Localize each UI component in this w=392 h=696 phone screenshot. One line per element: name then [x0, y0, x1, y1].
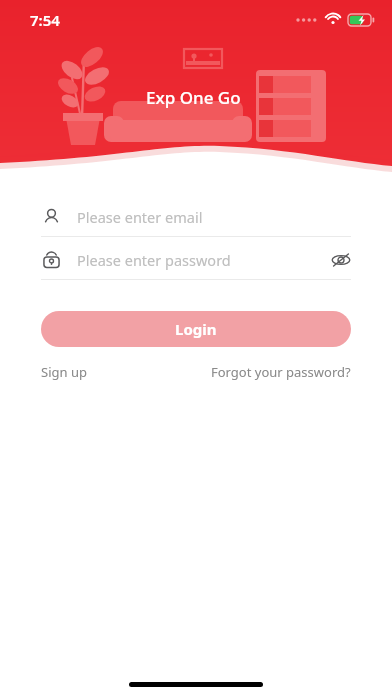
- staticText: Login: [175, 319, 217, 339]
- button[interactable]: Please enter email: [0, 198, 392, 237]
- button[interactable]: Forgot your password?: [211, 363, 351, 381]
- button[interactable]: Sign up: [41, 363, 87, 381]
- staticText: Please enter password: [77, 250, 331, 270]
- staticText: Please enter email: [77, 207, 351, 227]
- staticText: 7:54: [30, 10, 60, 30]
- staticText: Sign up: [41, 363, 87, 381]
- button[interactable]: Please enter password: [0, 241, 392, 280]
- staticText: Forgot your password?: [211, 363, 351, 381]
- staticText: Exp One Go: [146, 86, 241, 109]
- button[interactable]: Login: [41, 311, 351, 347]
- button[interactable]: Show password: [331, 250, 351, 270]
